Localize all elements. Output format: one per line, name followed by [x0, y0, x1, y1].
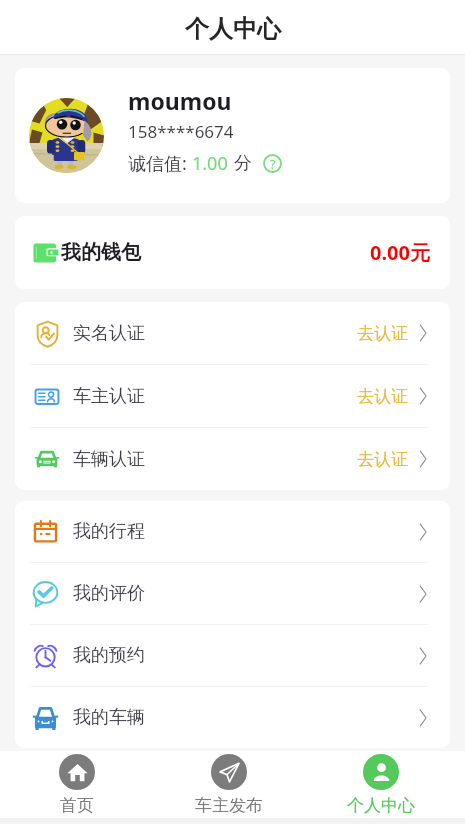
- button[interactable]: 车辆认证: [15, 428, 450, 490]
- staticText: 首页: [60, 795, 94, 815]
- staticText: 我的评价: [73, 582, 145, 605]
- staticText: moumou: [128, 85, 232, 116]
- staticText: 我的预约: [73, 644, 145, 667]
- staticText: 去认证: [357, 386, 408, 407]
- button[interactable]: 我的钱包: [15, 216, 450, 289]
- staticText: 分: [234, 152, 252, 175]
- staticText: 诚信值:: [128, 151, 187, 176]
- staticText: 0.00元: [370, 239, 430, 266]
- button[interactable]: 首页: [37, 751, 117, 818]
- staticText: 我的行程: [73, 520, 145, 543]
- staticText: ?: [270, 155, 276, 173]
- button[interactable]: moumou: [15, 68, 450, 203]
- staticText: 个人中心: [347, 795, 415, 815]
- staticText: 去认证: [357, 323, 408, 344]
- staticText: 我的车辆: [73, 706, 145, 729]
- button[interactable]: 帮助: [263, 154, 282, 173]
- button[interactable]: 车主认证: [15, 365, 450, 427]
- staticText: 车主发布: [195, 795, 263, 815]
- staticText: 1.00: [192, 151, 228, 176]
- staticText: 158****6674: [128, 120, 234, 143]
- button[interactable]: 车主发布: [173, 751, 285, 818]
- staticText: 车主认证: [73, 385, 145, 408]
- staticText: 我的钱包: [61, 240, 141, 265]
- button[interactable]: 实名认证: [15, 302, 450, 364]
- staticText: 个人中心: [185, 14, 281, 44]
- button[interactable]: 我的预约: [15, 625, 450, 686]
- button[interactable]: 我的车辆: [15, 687, 450, 748]
- button[interactable]: 个人中心: [325, 751, 437, 818]
- staticText: 车辆认证: [73, 448, 145, 471]
- button[interactable]: 我的评价: [15, 563, 450, 624]
- staticText: 去认证: [357, 449, 408, 470]
- button[interactable]: 我的行程: [15, 501, 450, 562]
- staticText: 实名认证: [73, 322, 145, 345]
